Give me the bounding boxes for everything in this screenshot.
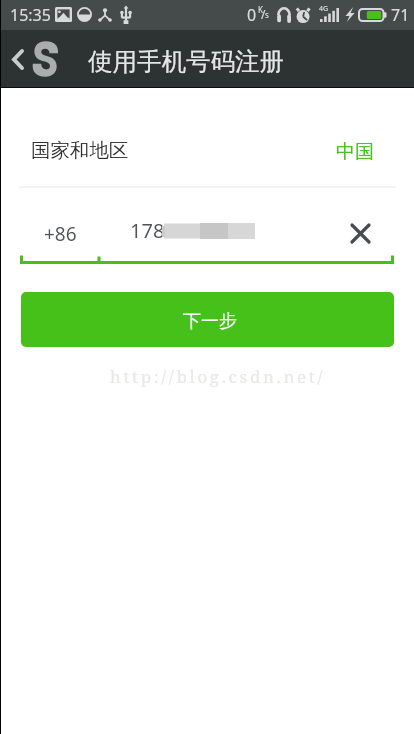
staticText: 中国 <box>336 140 374 164</box>
staticText: 4G <box>319 4 329 14</box>
button[interactable]: 下一步 <box>21 292 394 347</box>
staticText: K <box>258 4 263 15</box>
button[interactable]: Logo <box>30 41 60 81</box>
staticText: +86 <box>44 221 77 247</box>
staticText: 下一步 <box>183 310 237 333</box>
staticText: 0 <box>247 4 257 26</box>
staticText: 71 <box>391 4 410 26</box>
button[interactable]: 国家和地区 <box>0 115 414 187</box>
staticText: 国家和地区 <box>31 138 129 163</box>
button[interactable]: Back <box>1 31 35 88</box>
button[interactable]: Clear <box>344 217 377 250</box>
staticText: 178 <box>130 217 165 244</box>
staticText: 使用手机号码注册 <box>88 46 284 77</box>
staticText: http://blog.csdn.net/ <box>110 365 326 388</box>
staticText: 15:35 <box>10 4 51 26</box>
staticText: s <box>265 9 269 20</box>
staticText: / <box>261 6 266 22</box>
